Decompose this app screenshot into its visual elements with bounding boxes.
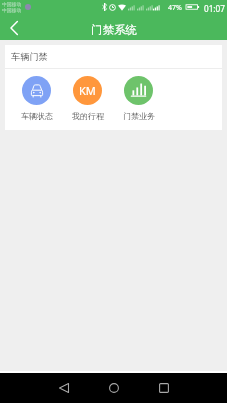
staticText: KM (79, 83, 96, 98)
staticText: 中国移动 (2, 7, 22, 13)
staticText: 我的行程 (72, 111, 104, 121)
staticText: 门禁业务 (123, 111, 155, 121)
button[interactable]: 门禁业务 (113, 69, 164, 121)
staticText: 01:07 (204, 3, 225, 14)
staticText: 47% (168, 3, 182, 13)
button[interactable]: Back (51, 375, 77, 401)
staticText: 门禁系统 (91, 23, 137, 37)
button[interactable]: 车辆状态 (11, 69, 62, 121)
staticText: 车辆状态 (21, 111, 53, 121)
button[interactable]: Recents (151, 375, 177, 401)
button[interactable]: KM (62, 69, 113, 121)
staticText: 中国移动 (2, 1, 22, 7)
button[interactable]: Home (101, 375, 127, 401)
button[interactable]: Back (0, 15, 28, 41)
staticText: 车辆门禁 (11, 51, 48, 63)
